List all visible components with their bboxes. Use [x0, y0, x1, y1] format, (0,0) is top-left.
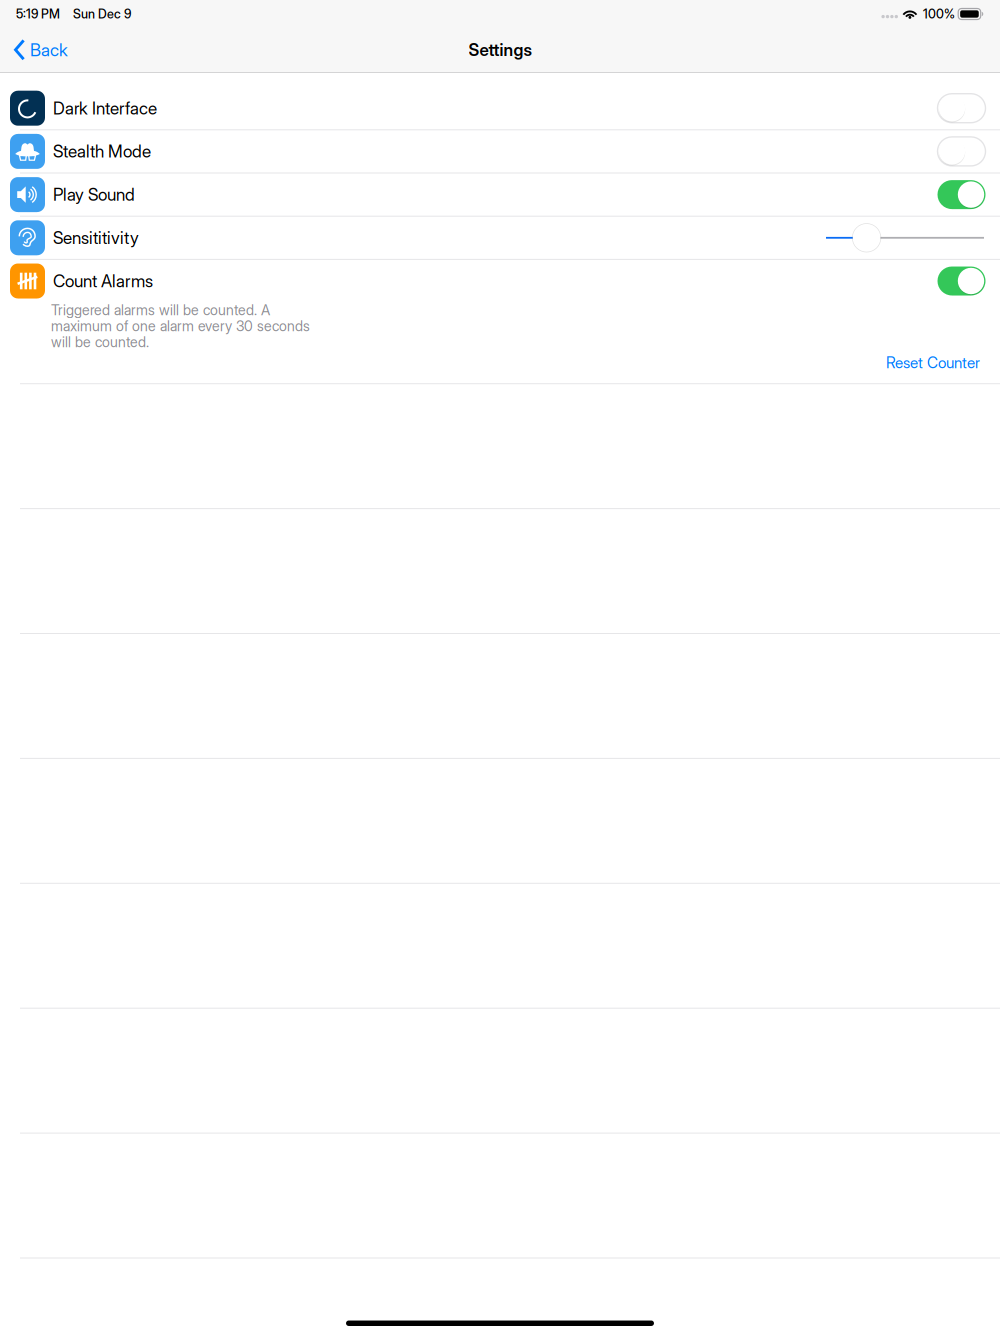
staticText: Count Alarms — [53, 271, 153, 291]
staticText: Sensititivity — [53, 227, 139, 248]
staticText: maximum of one alarm every 30 seconds — [51, 317, 310, 335]
staticText: Play Sound — [53, 184, 135, 205]
staticText: Dark Interface — [53, 98, 157, 118]
staticText: Reset Counter — [886, 353, 980, 372]
button[interactable]: Play Sound — [0, 173, 1000, 216]
button[interactable]: Back — [0, 28, 78, 72]
button[interactable]: Dark Interface — [0, 87, 1000, 129]
staticText: 5:19 PM — [16, 6, 60, 22]
button[interactable]: Sensititivity — [0, 217, 1000, 259]
staticText: will be counted. — [51, 333, 149, 351]
staticText: 100% — [923, 6, 955, 22]
staticText: Back — [30, 40, 68, 60]
button[interactable]: Count Alarms — [0, 260, 1000, 302]
button[interactable]: Stealth Mode — [0, 130, 1000, 172]
staticText: Stealth Mode — [53, 141, 151, 162]
staticText: Triggered alarms will be counted. A — [51, 301, 270, 319]
button[interactable]: Reset Counter — [886, 350, 980, 375]
staticText: Sun Dec 9 — [73, 6, 131, 22]
staticText: Settings — [468, 40, 531, 60]
